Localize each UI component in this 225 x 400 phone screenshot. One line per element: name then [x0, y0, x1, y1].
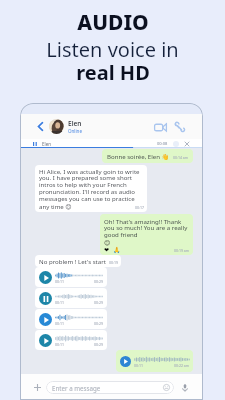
staticText: 😊: [104, 239, 111, 246]
staticText: 00:19: [109, 260, 118, 265]
staticText: 00:19 am: [174, 248, 190, 253]
button[interactable]: No problem ! Let's start: [35, 255, 121, 267]
button[interactable]: 00:11: [116, 350, 193, 372]
button[interactable]: Oh! That's amazing!! Thank you so much! …: [100, 214, 193, 255]
staticText: 00:22 am: [174, 363, 190, 368]
staticText: 00:11: [55, 342, 64, 347]
staticText: 00:17: [135, 205, 144, 210]
staticText: 00:11: [55, 300, 64, 305]
staticText: Enter a message: [52, 384, 101, 392]
staticText: 🙏: [113, 246, 121, 253]
staticText: Listen voice in: [46, 36, 179, 63]
button[interactable]: Back: [35, 121, 46, 132]
button[interactable]: Playback speed: [173, 141, 179, 147]
button[interactable]: Enter a message: [46, 381, 174, 394]
staticText: 00:11: [134, 363, 143, 368]
staticText: 00:29: [94, 300, 103, 305]
staticText: AUDIO: [77, 8, 149, 37]
staticText: No problem ! Let's start: [39, 257, 106, 265]
staticText: Online: [68, 128, 82, 134]
staticText: 00:29: [94, 321, 103, 326]
button[interactable]: Emoji: [162, 383, 171, 392]
staticText: Elen: [68, 119, 82, 128]
staticText: Bonne soirée, Elen 👋: [107, 152, 170, 160]
staticText: Oh! That's amazing!! Thank you so much! …: [104, 217, 190, 239]
staticText: 00:08: [157, 141, 168, 146]
staticText: 00:14 am: [173, 155, 189, 160]
button[interactable]: 00:11: [35, 267, 107, 287]
button[interactable]: Attach: [31, 381, 43, 393]
staticText: Elen: [42, 141, 51, 147]
staticText: Hi Alice, I was actually goin to write y…: [39, 167, 144, 210]
staticText: 00:11: [55, 321, 64, 326]
button[interactable]: Bonne soirée, Elen 👋: [102, 149, 193, 163]
staticText: 00:29: [94, 342, 103, 347]
staticText: real HD: [76, 59, 150, 86]
button[interactable]: 00:11: [35, 330, 107, 350]
staticText: 00:29: [94, 279, 103, 284]
staticText: ❤️: [104, 246, 110, 253]
button[interactable]: Call: [173, 120, 187, 134]
button[interactable]: Hi Alice, I was actually goin to write y…: [35, 165, 147, 212]
button[interactable]: Close player: [184, 141, 190, 147]
staticText: 00:11: [55, 279, 64, 284]
button[interactable]: Video call: [153, 120, 167, 134]
button[interactable]: 00:11: [35, 309, 107, 329]
button[interactable]: 00:11: [35, 288, 107, 308]
button[interactable]: Voice message: [179, 382, 190, 393]
